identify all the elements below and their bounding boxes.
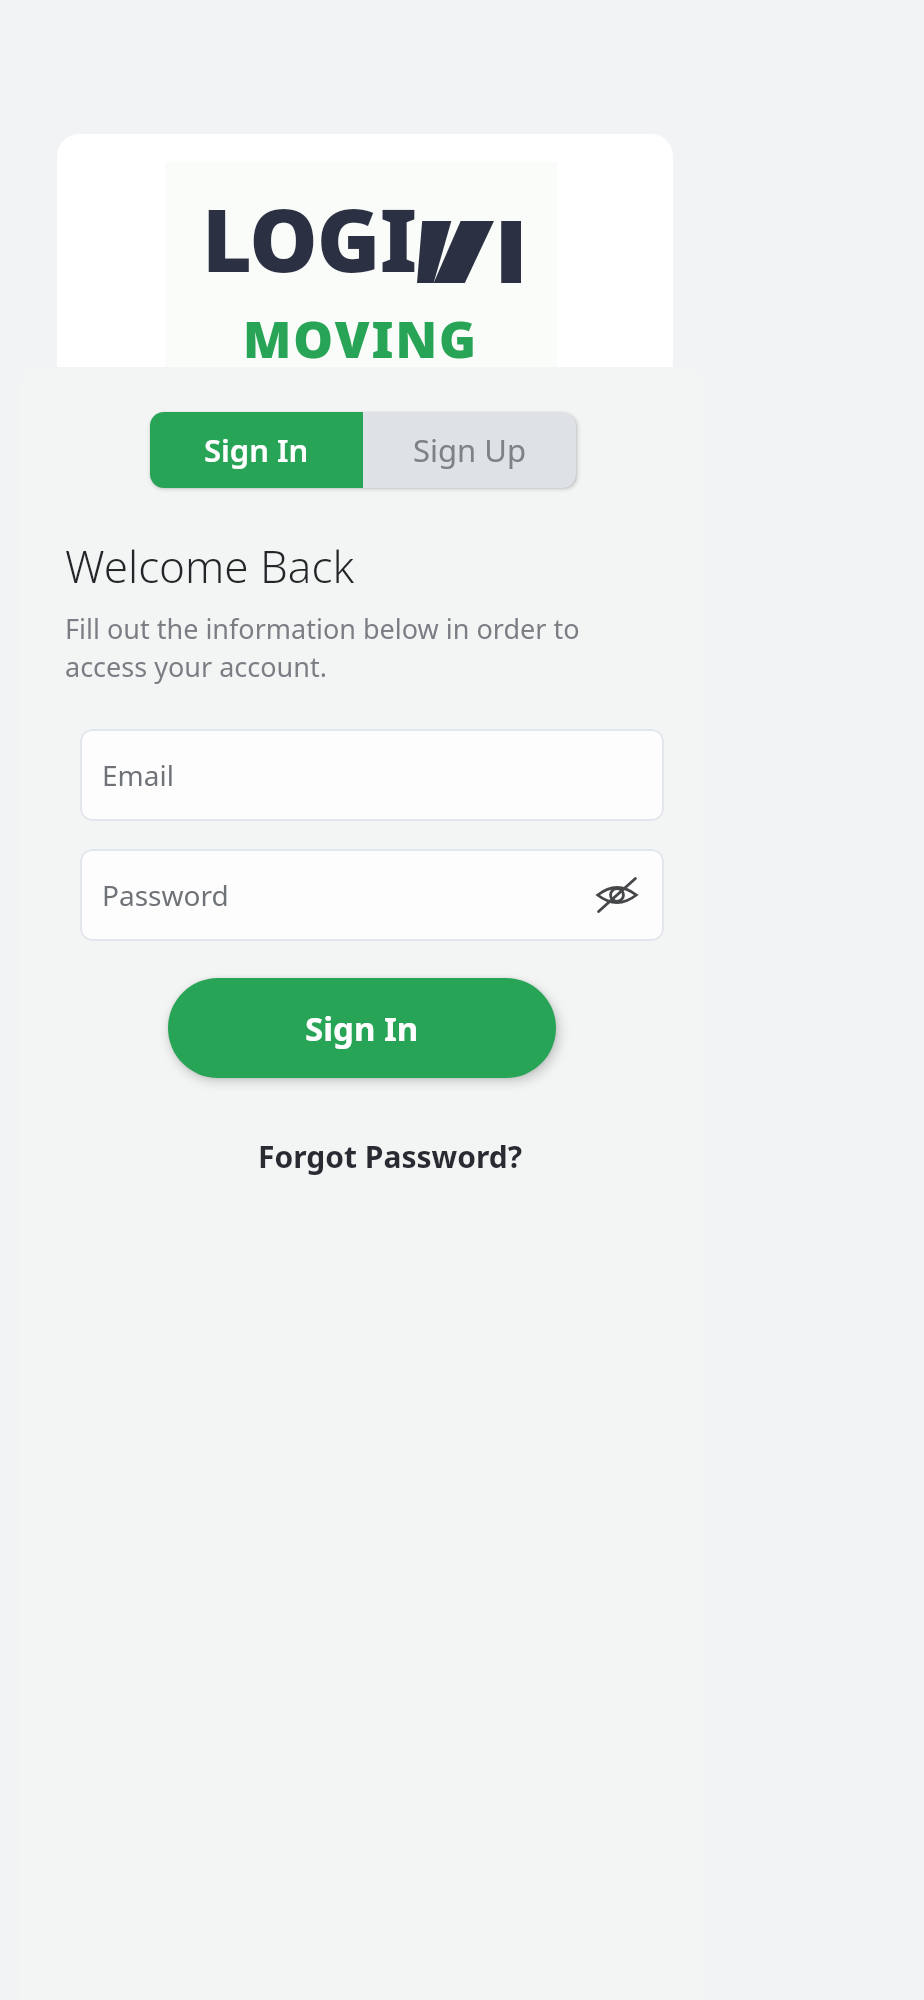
staticText: LOGI	[202, 180, 417, 297]
button[interactable]: Sign In	[150, 412, 363, 488]
button[interactable]: Sign In	[168, 978, 556, 1078]
staticText: Sign In	[305, 1006, 419, 1051]
staticText: Sign In	[204, 429, 309, 471]
staticText: Sign Up	[413, 429, 527, 471]
staticText: Welcome Back	[65, 536, 355, 596]
staticText: MOVING	[243, 305, 479, 373]
staticText: Password	[102, 876, 229, 914]
button[interactable]: Sign Up	[363, 412, 576, 488]
staticText: Fill out the information below in order …	[65, 610, 664, 685]
button[interactable]: Password	[80, 849, 664, 941]
staticText: Forgot Password?	[258, 1136, 523, 1177]
staticText: Email	[102, 756, 174, 794]
button[interactable]: Email	[80, 729, 664, 821]
button[interactable]: Show password	[590, 868, 644, 922]
button[interactable]: Forgot Password?	[248, 1126, 533, 1187]
